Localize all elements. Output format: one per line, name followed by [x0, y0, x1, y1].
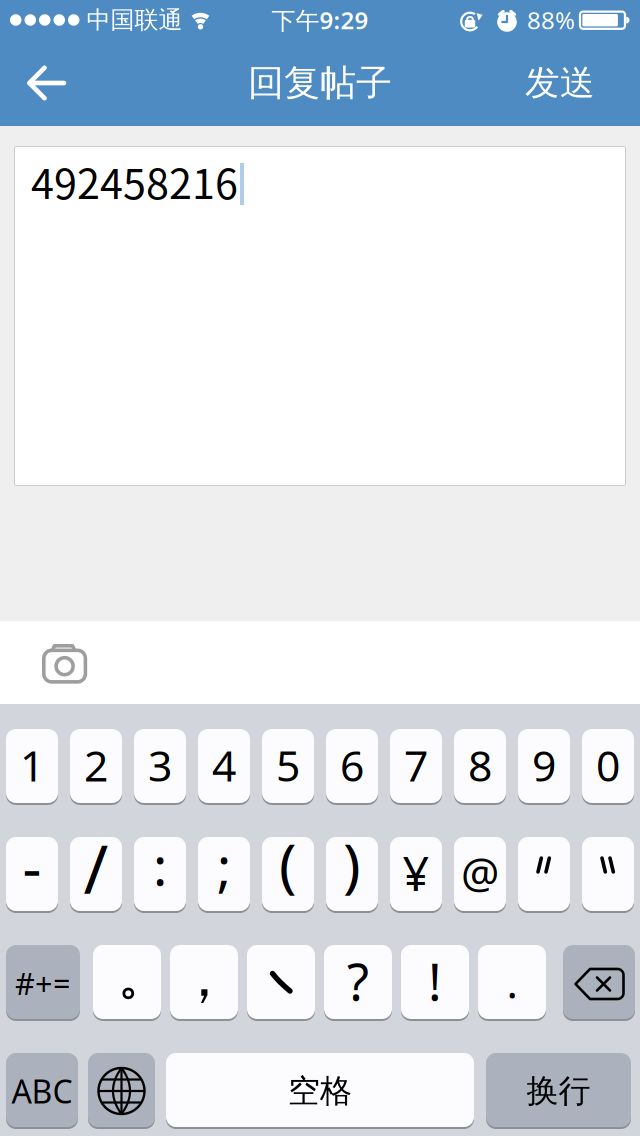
staticText: 88%	[527, 4, 575, 36]
staticText: (	[279, 825, 297, 903]
staticText: @	[461, 844, 499, 900]
button[interactable]: 6	[326, 729, 378, 805]
button[interactable]: 7	[390, 729, 442, 805]
staticText: ?	[347, 947, 369, 1015]
staticText: )	[343, 825, 361, 903]
button[interactable]: 换行	[486, 1053, 631, 1129]
staticText: 换行	[526, 1071, 590, 1111]
staticText: 2	[84, 737, 108, 793]
staticText: 中国联通	[86, 5, 182, 35]
staticText: 9	[532, 737, 556, 793]
staticText: 4	[212, 737, 236, 793]
staticText: :	[153, 830, 167, 900]
button[interactable]	[582, 837, 634, 913]
button[interactable]: ?	[324, 945, 392, 1021]
button[interactable]: 2	[70, 729, 122, 805]
button[interactable]	[563, 945, 635, 1021]
staticText: ABC	[11, 1070, 72, 1112]
button[interactable]: 3	[134, 729, 186, 805]
button[interactable]: .	[478, 945, 546, 1021]
staticText: 7	[404, 737, 428, 793]
button[interactable]: 0	[582, 729, 634, 805]
staticText: ，	[176, 943, 232, 1011]
staticText: 空格	[288, 1071, 352, 1111]
button[interactable]: 5	[262, 729, 314, 805]
button[interactable]	[518, 837, 570, 913]
staticText: #+=	[15, 963, 71, 1003]
button[interactable]: 1	[6, 729, 58, 805]
button[interactable]: ;	[198, 837, 250, 913]
button[interactable]	[93, 945, 161, 1021]
button[interactable]: #+=	[6, 945, 80, 1021]
staticText: .	[506, 954, 517, 1010]
button[interactable]: /	[70, 837, 122, 913]
button[interactable]: )	[326, 837, 378, 913]
staticText: 发送	[525, 62, 595, 104]
staticText: 1	[20, 737, 44, 793]
button[interactable]: 4	[198, 729, 250, 805]
button[interactable]: ABC	[6, 1053, 78, 1129]
staticText: ;	[217, 830, 231, 900]
button[interactable]: ，	[170, 945, 238, 1021]
button[interactable]: ¥	[390, 837, 442, 913]
button[interactable]: -	[6, 837, 58, 913]
staticText: /	[83, 824, 108, 912]
button[interactable]	[88, 1053, 155, 1129]
button[interactable]: 9	[518, 729, 570, 805]
staticText: 8	[468, 737, 492, 793]
staticText: !	[428, 947, 442, 1015]
button[interactable]	[247, 945, 315, 1021]
staticText: 下午9:29	[271, 4, 368, 36]
button[interactable]: !	[401, 945, 469, 1021]
button[interactable]	[0, 40, 65, 126]
staticText: 3	[148, 737, 172, 793]
button[interactable]: :	[134, 837, 186, 913]
button[interactable]: 空格	[166, 1053, 474, 1129]
staticText: 492458216	[31, 151, 238, 211]
button[interactable]	[0, 621, 88, 685]
button[interactable]: 8	[454, 729, 506, 805]
button[interactable]: @	[454, 837, 506, 913]
staticText: 6	[340, 737, 364, 793]
button[interactable]: (	[262, 837, 314, 913]
staticText: -	[22, 827, 41, 905]
button[interactable]: 发送	[525, 38, 640, 128]
staticText: 回复帖子	[248, 61, 392, 105]
staticText: 0	[596, 737, 620, 793]
staticText: ¥	[402, 842, 429, 904]
staticText: 5	[276, 737, 300, 793]
